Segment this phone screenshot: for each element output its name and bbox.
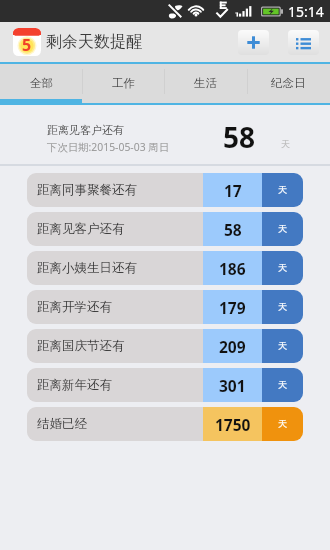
staticText: 距离国庆节还有: [37, 338, 125, 354]
button[interactable]: 纪念日: [247, 62, 330, 105]
staticText: 天: [278, 184, 288, 196]
staticText: 纪念日: [271, 76, 306, 90]
button[interactable]: 距离同事聚餐还有: [27, 173, 303, 207]
button[interactable]: 全部: [0, 62, 82, 105]
staticText: 距离小姨生日还有: [37, 260, 137, 276]
staticText: 距离见客户还有: [37, 221, 125, 237]
button[interactable]: 距离小姨生日还有: [27, 251, 303, 285]
button[interactable]: 结婚已经: [27, 407, 303, 441]
staticText: 209: [219, 336, 246, 357]
staticText: 天: [278, 223, 288, 235]
staticText: 1750: [215, 414, 251, 435]
staticText: 179: [219, 297, 246, 318]
button[interactable]: Add new reminder: [238, 30, 269, 55]
button[interactable]: 距离开学还有: [27, 290, 303, 324]
staticText: 天: [281, 138, 290, 149]
staticText: 天: [278, 262, 288, 274]
staticText: 下次日期:2015-05-03 周日: [47, 140, 170, 154]
staticText: 58: [224, 219, 242, 240]
staticText: 距离新年还有: [37, 377, 112, 393]
staticText: 186: [219, 258, 246, 279]
button[interactable]: 距离见客户还有: [27, 212, 303, 246]
staticText: 距离同事聚餐还有: [37, 182, 137, 198]
staticText: 天: [278, 340, 288, 352]
button[interactable]: 生活: [164, 62, 247, 105]
staticText: 天: [278, 301, 288, 313]
button[interactable]: 工作: [82, 62, 164, 105]
button[interactable]: 距离国庆节还有: [27, 329, 303, 363]
staticText: 剩余天数提醒: [46, 32, 142, 52]
staticText: 17: [224, 180, 242, 201]
staticText: 天: [278, 379, 288, 391]
staticText: 结婚已经: [37, 416, 87, 432]
button[interactable]: 距离新年还有: [27, 368, 303, 402]
staticText: 工作: [112, 76, 135, 90]
staticText: 全部: [30, 76, 53, 90]
staticText: 距离见客户还有: [47, 123, 124, 137]
staticText: 距离开学还有: [37, 299, 112, 315]
staticText: 301: [219, 375, 246, 396]
button[interactable]: Show list: [288, 30, 319, 55]
staticText: 5: [22, 34, 32, 56]
staticText: 天: [278, 418, 288, 430]
staticText: 15:14: [288, 2, 324, 21]
staticText: 生活: [194, 76, 217, 90]
staticText: 58: [223, 118, 256, 156]
